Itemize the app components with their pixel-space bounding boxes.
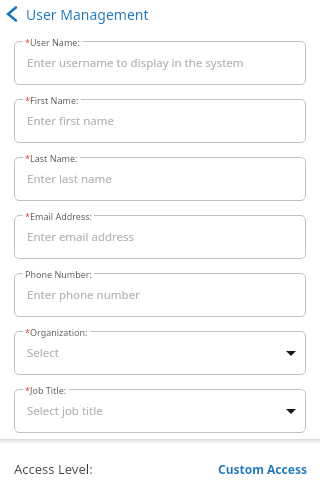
button[interactable]: Enter username to display in the system xyxy=(14,41,306,85)
staticText: Enter email address xyxy=(27,229,135,245)
button[interactable]: Enter email address xyxy=(14,215,306,259)
staticText: Select xyxy=(27,345,59,361)
staticText: * xyxy=(25,326,30,338)
button[interactable]: Select job title xyxy=(14,389,306,433)
staticText: First Name: xyxy=(30,94,79,106)
staticText: Organization: xyxy=(30,326,88,338)
staticText: Custom Access xyxy=(218,461,307,477)
staticText: Select job title xyxy=(27,403,103,419)
button[interactable]: Enter last name xyxy=(14,157,306,201)
staticText: Enter username to display in the system xyxy=(27,55,244,71)
staticText: Enter first name xyxy=(27,113,114,129)
staticText: Phone Number: xyxy=(25,268,92,280)
staticText: Email Address: xyxy=(30,210,92,222)
staticText: Enter last name xyxy=(27,171,112,187)
staticText: * xyxy=(25,152,30,164)
staticText: * xyxy=(25,384,30,396)
staticText: Access Level: xyxy=(14,460,93,478)
staticText: * xyxy=(25,94,30,106)
button[interactable]: Enter phone number xyxy=(14,273,306,317)
staticText: Last Name: xyxy=(30,152,78,164)
button[interactable]: Select xyxy=(14,331,306,375)
staticText: Job Title: xyxy=(30,384,67,396)
staticText: User Management xyxy=(26,5,149,24)
staticText: * xyxy=(25,36,30,48)
staticText: Enter phone number xyxy=(27,287,140,303)
button[interactable]: User Management xyxy=(5,3,320,25)
button[interactable]: Enter first name xyxy=(14,99,306,143)
button[interactable]: Custom Access xyxy=(218,461,307,477)
staticText: User Name: xyxy=(30,36,80,48)
staticText: * xyxy=(25,210,30,222)
